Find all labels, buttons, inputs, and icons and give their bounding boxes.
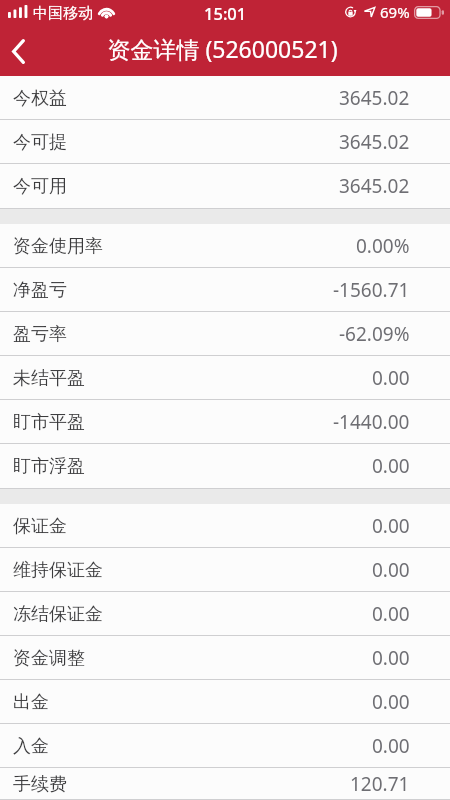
staticText: 未结平盈 <box>13 367 85 390</box>
button[interactable]: 净盈亏 <box>0 268 450 312</box>
staticText: 15:01 <box>204 2 247 24</box>
staticText: 净盈亏 <box>13 279 67 302</box>
staticText: 冻结保证金 <box>13 603 103 626</box>
staticText: 0.00% <box>356 233 410 259</box>
staticText: -62.09% <box>339 321 410 347</box>
staticText: 盯市平盈 <box>13 411 85 434</box>
staticText: -1440.00 <box>333 409 410 435</box>
button[interactable]: 入金 <box>0 724 450 768</box>
staticText: 120.71 <box>350 771 410 797</box>
button[interactable]: 盯市浮盈 <box>0 444 450 488</box>
staticText: 今可用 <box>13 175 67 198</box>
staticText: 资金使用率 <box>13 235 103 258</box>
button[interactable]: 今权益 <box>0 76 450 120</box>
button[interactable]: 盯市平盈 <box>0 400 450 444</box>
button[interactable]: 冻结保证金 <box>0 592 450 636</box>
staticText: 资金调整 <box>13 647 85 670</box>
staticText: 出金 <box>13 691 49 714</box>
staticText: 维持保证金 <box>13 559 103 582</box>
staticText: 盈亏率 <box>13 323 67 346</box>
button[interactable]: Back <box>0 28 44 76</box>
staticText: 今权益 <box>13 87 67 110</box>
button[interactable]: 出金 <box>0 680 450 724</box>
button[interactable]: 手续费 <box>0 768 450 800</box>
staticText: 中国移动 <box>33 4 93 23</box>
staticText: 0.00 <box>372 453 410 479</box>
button[interactable]: 资金调整 <box>0 636 450 680</box>
staticText: 3645.02 <box>339 129 410 155</box>
button[interactable]: 盈亏率 <box>0 312 450 356</box>
staticText: 0.00 <box>372 733 410 759</box>
staticText: 0.00 <box>372 689 410 715</box>
staticText: 0.00 <box>372 365 410 391</box>
staticText: 0.00 <box>372 513 410 539</box>
staticText: 资金详情 (526000521) <box>107 33 338 64</box>
button[interactable]: 今可用 <box>0 164 450 208</box>
staticText: -1560.71 <box>333 277 410 303</box>
staticText: 3645.02 <box>339 173 410 199</box>
staticText: 入金 <box>13 735 49 758</box>
staticText: 69% <box>380 2 410 22</box>
staticText: 保证金 <box>13 515 67 538</box>
button[interactable]: 维持保证金 <box>0 548 450 592</box>
button[interactable]: 保证金 <box>0 504 450 548</box>
staticText: 0.00 <box>372 645 410 671</box>
staticText: 0.00 <box>372 601 410 627</box>
staticText: 手续费 <box>13 773 67 796</box>
button[interactable]: 今可提 <box>0 120 450 164</box>
staticText: 3645.02 <box>339 85 410 111</box>
button[interactable]: 未结平盈 <box>0 356 450 400</box>
button[interactable]: 资金使用率 <box>0 224 450 268</box>
staticText: 盯市浮盈 <box>13 455 85 478</box>
staticText: 今可提 <box>13 131 67 154</box>
staticText: 0.00 <box>372 557 410 583</box>
